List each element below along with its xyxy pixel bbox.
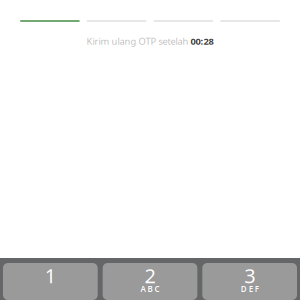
button[interactable]: OTP code field bbox=[0, 0, 300, 22]
staticText: D E F bbox=[241, 284, 259, 294]
button[interactable]: 3 bbox=[202, 263, 297, 300]
button[interactable]: 1 bbox=[3, 263, 98, 300]
staticText: 2 bbox=[144, 262, 155, 289]
button[interactable]: 2 bbox=[103, 263, 197, 300]
staticText: 3 bbox=[244, 262, 255, 289]
staticText: 00:28 bbox=[190, 35, 213, 47]
staticText: Kirim ulang OTP setelah bbox=[86, 35, 190, 47]
staticText: 1 bbox=[45, 262, 56, 289]
staticText: A B C bbox=[140, 284, 159, 294]
